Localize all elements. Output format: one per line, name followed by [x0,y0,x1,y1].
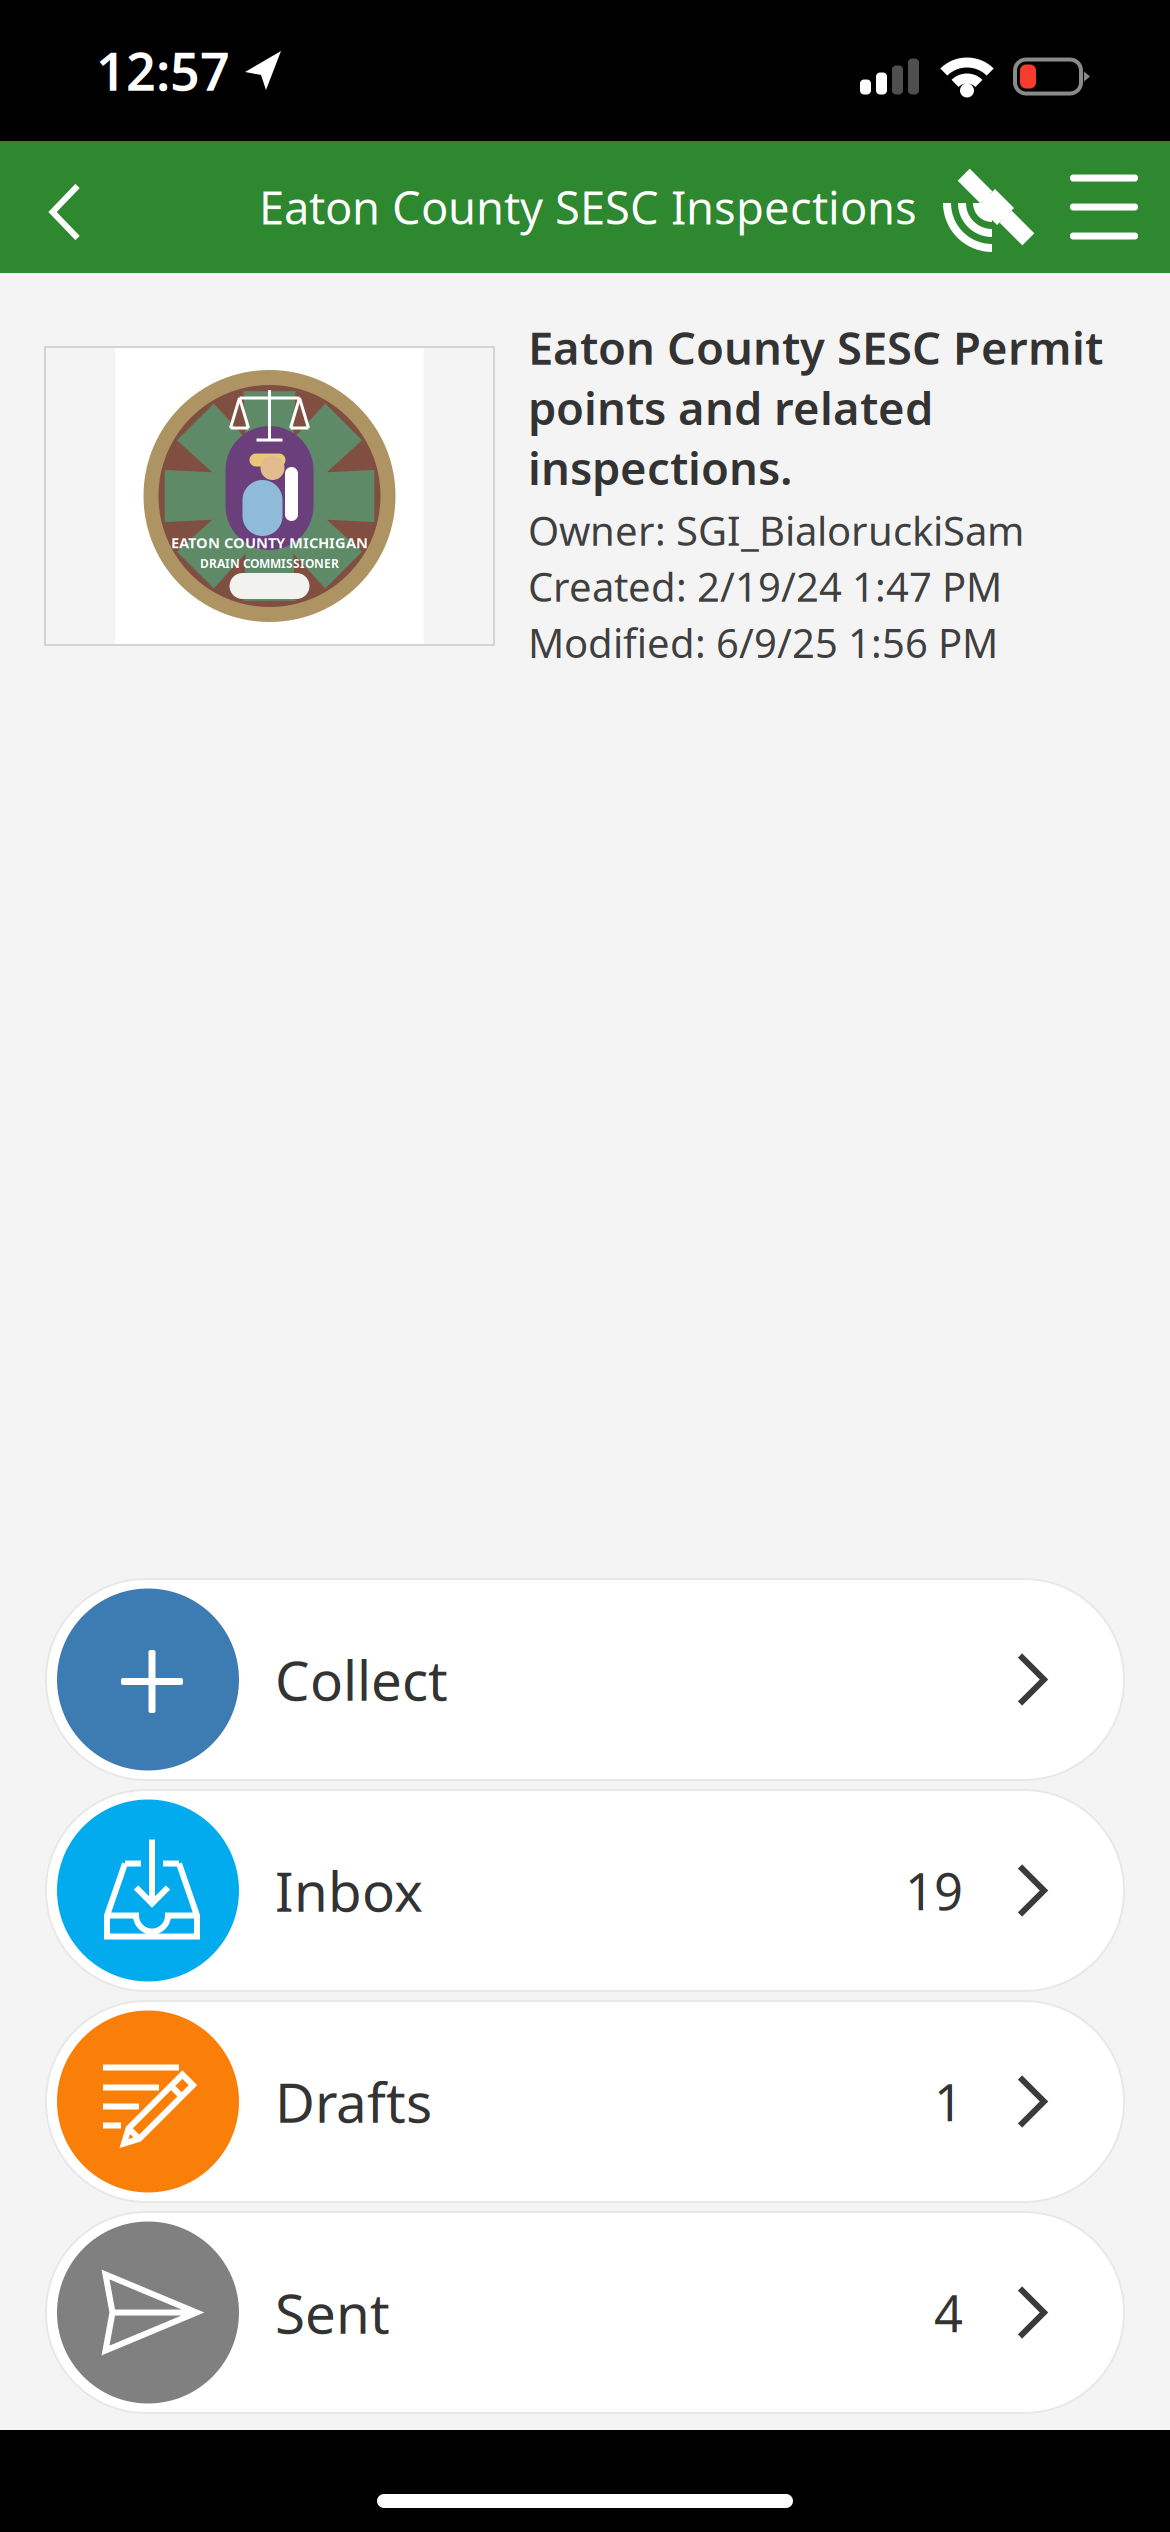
staticText: 12:57 [96,36,230,105]
staticText: EATON COUNTY MICHIGAN [171,533,368,552]
staticText: Eaton County SESC Inspections [259,177,917,237]
staticText: Sent [275,2276,390,2349]
staticText: Collect [275,1643,448,1716]
button[interactable]: Drafts [46,2001,1124,2202]
staticText: Eaton County SESC Permit points and rela… [528,317,1103,498]
staticText: Owner: SGI_BialoruckiSam [528,504,1024,557]
staticText: Inbox [275,1854,423,1927]
staticText: 1 [934,2068,963,2135]
staticText: Drafts [275,2065,432,2138]
button[interactable]: Collect [46,1579,1124,1780]
button[interactable]: Sent [46,2212,1124,2413]
staticText: DRAIN COMMISSIONER [200,555,339,571]
staticText: Modified: 6/9/25 1:56 PM [528,616,998,669]
button[interactable]: Back [0,141,112,273]
staticText: Created: 2/19/24 1:47 PM [528,560,1002,613]
staticText: 19 [905,1857,963,1924]
staticText: 4 [934,2279,963,2346]
button[interactable]: Menu [1048,141,1160,273]
button[interactable]: Inbox [46,1790,1124,1991]
button[interactable]: GPS status [930,143,1048,275]
